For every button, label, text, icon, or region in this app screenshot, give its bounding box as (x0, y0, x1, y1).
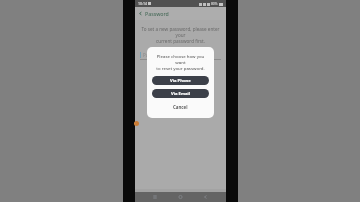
staticText: Forgot your password? (159, 65, 202, 70)
staticText: 80% (211, 2, 218, 6)
button[interactable]: Forgot your password? (157, 64, 204, 71)
button[interactable]: Via Email (152, 89, 209, 98)
button[interactable]: Back (200, 192, 211, 202)
staticText: Via Phone (170, 78, 191, 84)
staticText: 10:14 (138, 1, 147, 6)
button[interactable]: Password (140, 50, 221, 60)
staticText: Via Email (171, 91, 191, 97)
staticText: Password (143, 52, 163, 58)
staticText: Please choose how you want to reset your… (152, 53, 209, 71)
button[interactable]: Via Phone (152, 76, 209, 85)
staticText: Password (145, 10, 169, 17)
button[interactable]: Back (137, 9, 170, 18)
staticText: Cancel (173, 104, 188, 110)
button[interactable]: Home (175, 192, 186, 202)
button[interactable]: Cancel (169, 103, 192, 111)
staticText: To set a new password, please enter your… (140, 26, 221, 44)
button[interactable]: Recent apps (150, 192, 160, 202)
